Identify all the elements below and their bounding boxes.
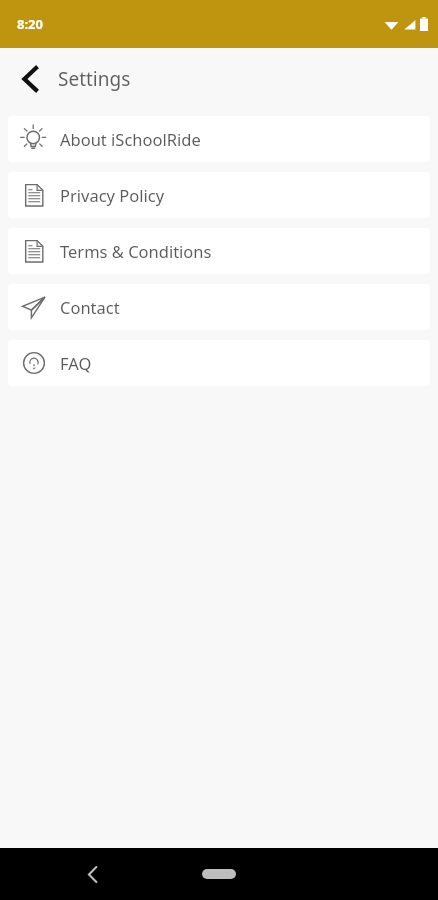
button[interactable]: Home [187,857,251,891]
staticText: 8:20 [17,15,43,33]
staticText: Privacy Policy [60,184,165,206]
button[interactable]: Terms & Conditions [8,228,430,274]
staticText: Contact [60,296,120,318]
button[interactable]: Contact [8,284,430,330]
button[interactable]: About iSchoolRide [8,116,430,162]
button[interactable]: Privacy Policy [8,172,430,218]
button[interactable]: Back [8,57,52,101]
button[interactable]: Back [72,854,112,894]
staticText: About iSchoolRide [60,128,201,150]
staticText: Settings [58,66,131,92]
button[interactable]: FAQ [8,340,430,386]
staticText: FAQ [60,352,92,374]
staticText: Terms & Conditions [60,240,212,262]
